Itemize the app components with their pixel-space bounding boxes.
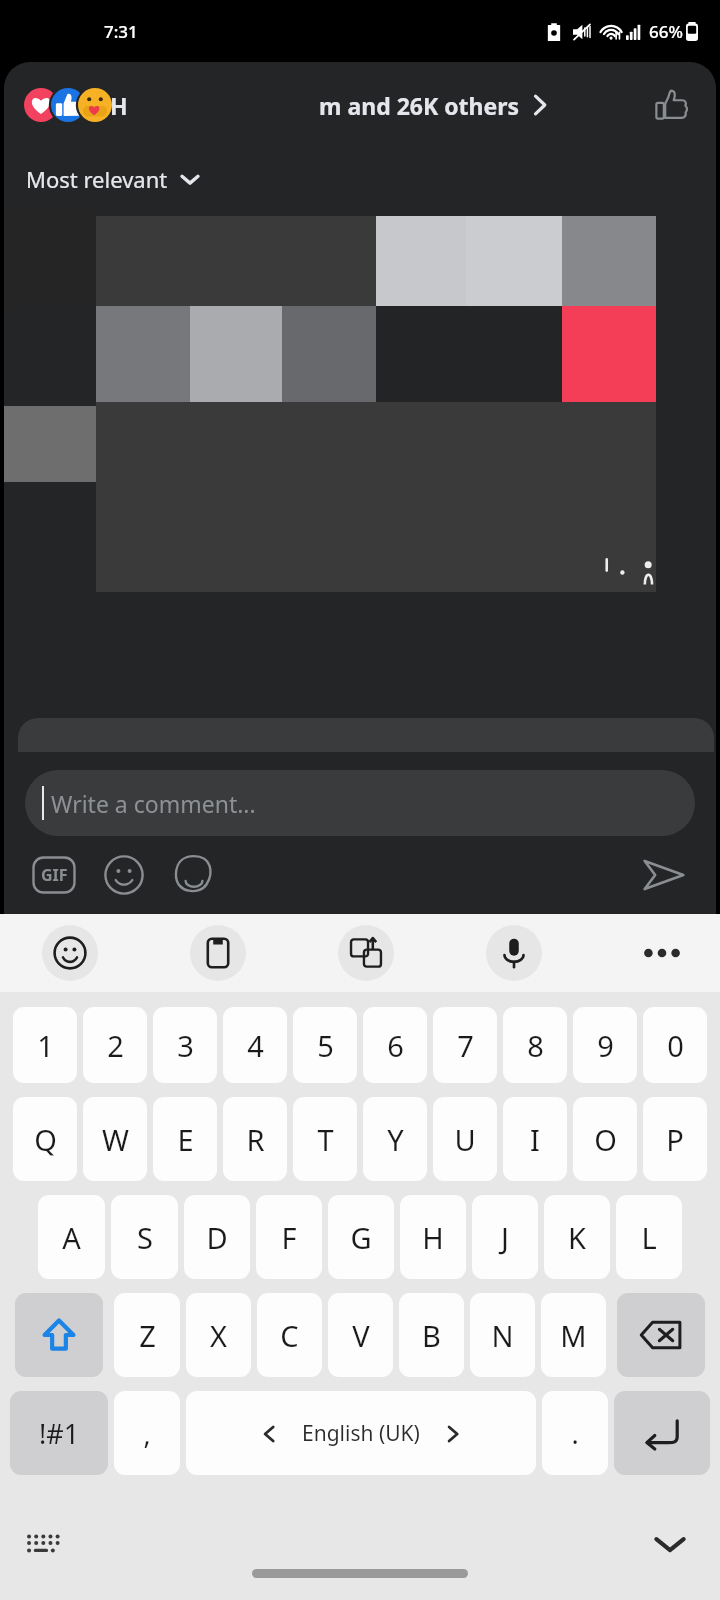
staticText: 2 — [107, 1026, 124, 1065]
staticText: D — [206, 1218, 228, 1257]
staticText: English (UK) — [302, 1419, 420, 1448]
button[interactable]: . — [542, 1391, 608, 1475]
staticText: 7 — [457, 1026, 474, 1065]
staticText: 8 — [527, 1026, 544, 1065]
button[interactable]: Keyboard settings — [16, 1516, 72, 1572]
button[interactable]: Write a comment... — [25, 770, 695, 836]
button[interactable]: !#1 — [10, 1391, 108, 1475]
button[interactable]: F — [256, 1195, 322, 1279]
staticText: Most relevant — [26, 164, 168, 194]
staticText: M — [560, 1316, 587, 1355]
button[interactable]: More options — [634, 925, 690, 981]
staticText: F — [281, 1218, 297, 1257]
staticText: 5 — [317, 1026, 334, 1065]
staticText: T — [317, 1120, 334, 1159]
button[interactable]: I — [503, 1097, 567, 1181]
button[interactable]: H — [24, 62, 696, 148]
button[interactable]: L — [616, 1195, 682, 1279]
staticText: Write a comment... — [51, 788, 256, 819]
button[interactable]: Enter — [614, 1391, 710, 1475]
staticText: , — [143, 1415, 151, 1452]
button[interactable]: 1 — [13, 1007, 77, 1083]
staticText: B — [422, 1316, 441, 1355]
button[interactable]: 6 — [363, 1007, 427, 1083]
button[interactable]: V — [328, 1293, 393, 1377]
button[interactable]: , — [114, 1391, 180, 1475]
button[interactable]: K — [544, 1195, 610, 1279]
button[interactable]: 8 — [503, 1007, 567, 1083]
staticText: H — [110, 90, 128, 121]
staticText: 7:31 — [104, 20, 138, 43]
staticText: A — [62, 1218, 81, 1257]
button[interactable]: U — [433, 1097, 497, 1181]
button[interactable]: E — [153, 1097, 217, 1181]
staticText: K — [568, 1218, 586, 1257]
staticText: L — [641, 1218, 657, 1257]
staticText: 0 — [667, 1026, 684, 1065]
button[interactable]: G — [328, 1195, 394, 1279]
button[interactable]: 5 — [293, 1007, 357, 1083]
button[interactable]: Translate — [338, 925, 394, 981]
button[interactable]: O — [573, 1097, 637, 1181]
button[interactable]: GIF — [30, 851, 78, 899]
button[interactable]: M — [541, 1293, 606, 1377]
button[interactable]: 9 — [573, 1007, 637, 1083]
button[interactable]: Emoji — [42, 925, 98, 981]
button[interactable]: 7 — [433, 1007, 497, 1083]
button[interactable]: 4 — [223, 1007, 287, 1083]
button[interactable]: W — [83, 1097, 147, 1181]
button[interactable]: Emoji — [100, 851, 148, 899]
button[interactable]: Send — [638, 849, 690, 901]
button[interactable]: English (UK) — [186, 1391, 536, 1475]
staticText: S — [137, 1218, 153, 1257]
button[interactable]: H — [400, 1195, 466, 1279]
staticText: !#1 — [39, 1415, 80, 1452]
staticText: GIF — [41, 864, 68, 886]
staticText: Z — [139, 1316, 156, 1355]
staticText: 66% — [649, 20, 683, 43]
staticText: O — [594, 1120, 617, 1159]
button[interactable]: D — [184, 1195, 250, 1279]
staticText: V — [352, 1316, 370, 1355]
staticText: U — [454, 1120, 476, 1159]
staticText: H — [422, 1218, 444, 1257]
button[interactable]: Backspace — [617, 1293, 705, 1377]
button[interactable]: X — [186, 1293, 251, 1377]
button[interactable]: 2 — [83, 1007, 147, 1083]
button[interactable]: N — [470, 1293, 535, 1377]
button[interactable]: S — [111, 1195, 178, 1279]
staticText: N — [491, 1316, 514, 1355]
button[interactable]: Sticker — [170, 851, 218, 899]
button[interactable]: Clipboard — [190, 925, 246, 981]
staticText: . — [571, 1415, 579, 1452]
button[interactable]: B — [399, 1293, 464, 1377]
staticText: 3 — [177, 1026, 194, 1065]
staticText: G — [350, 1218, 372, 1257]
staticText: 1 — [37, 1026, 54, 1065]
staticText: Y — [387, 1120, 404, 1159]
button[interactable]: C — [257, 1293, 322, 1377]
button[interactable]: 3 — [153, 1007, 217, 1083]
button[interactable]: Shift — [15, 1293, 103, 1377]
button[interactable]: 0 — [643, 1007, 707, 1083]
staticText: 6 — [387, 1026, 404, 1065]
button[interactable]: A — [38, 1195, 105, 1279]
staticText: X — [210, 1316, 227, 1355]
button[interactable]: J — [472, 1195, 538, 1279]
button[interactable]: Voice input — [486, 925, 542, 981]
button[interactable]: Q — [13, 1097, 77, 1181]
staticText: 9 — [597, 1026, 614, 1065]
staticText: C — [280, 1316, 299, 1355]
staticText: Q — [34, 1120, 57, 1159]
button[interactable]: Y — [363, 1097, 427, 1181]
button[interactable]: Most relevant — [26, 148, 200, 210]
staticText: I — [530, 1120, 540, 1159]
button[interactable]: R — [223, 1097, 287, 1181]
staticText: J — [501, 1218, 509, 1257]
button[interactable]: Z — [114, 1293, 180, 1377]
staticText: W — [102, 1120, 129, 1159]
button[interactable]: P — [643, 1097, 707, 1181]
button[interactable]: Hide keyboard — [642, 1516, 698, 1572]
button[interactable]: Like — [648, 81, 696, 129]
button[interactable]: T — [293, 1097, 357, 1181]
